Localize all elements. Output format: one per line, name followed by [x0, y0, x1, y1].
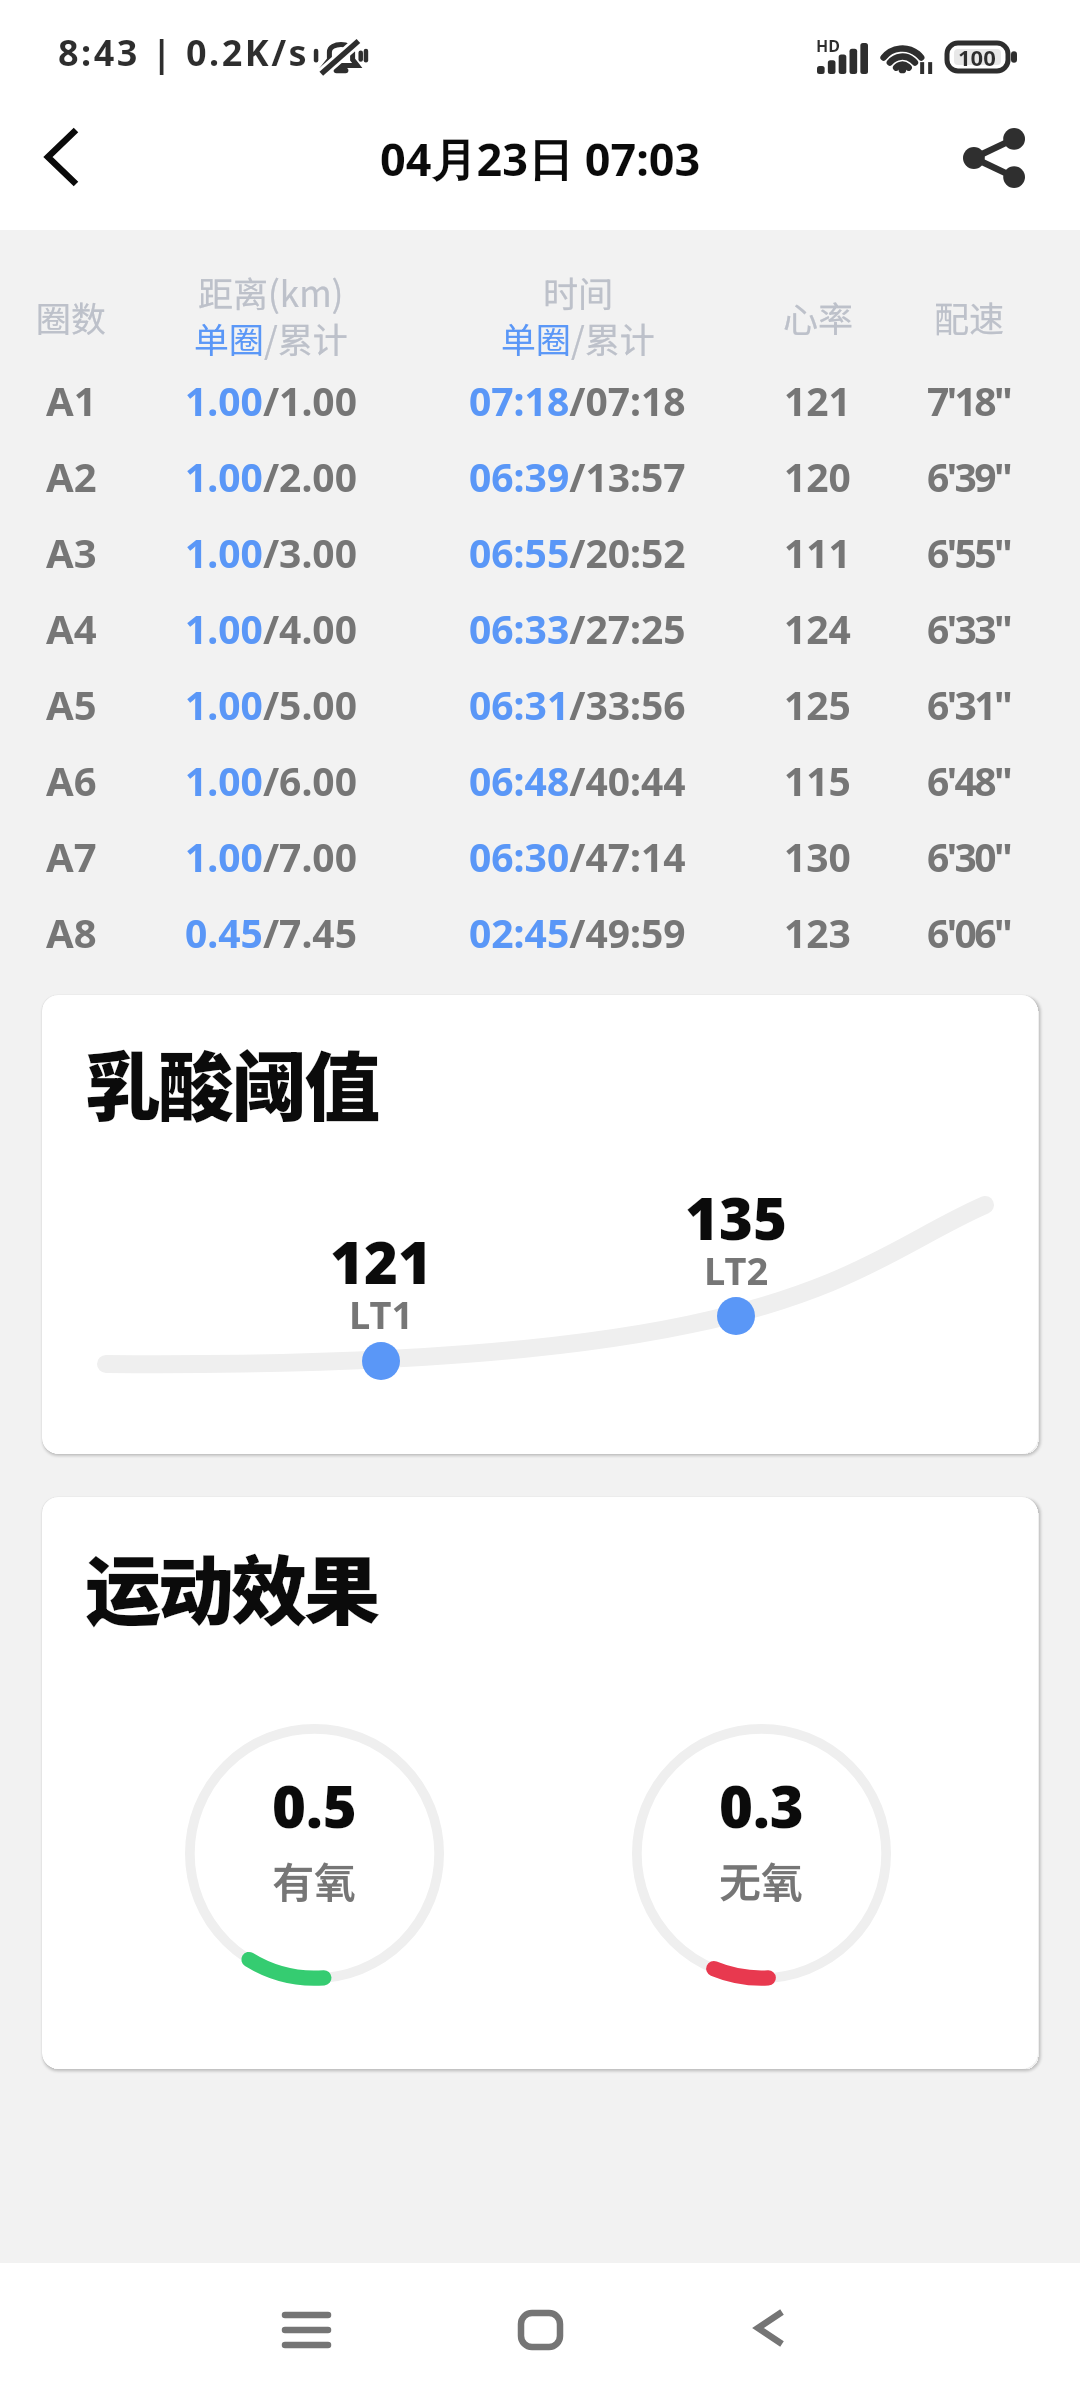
- staticText: 04月23日 07:03: [380, 128, 701, 189]
- staticText: A2: [46, 449, 97, 503]
- staticText: 1.00/3.00: [185, 526, 357, 579]
- staticText: 125: [784, 678, 851, 731]
- button[interactable]: Back: [20, 115, 104, 199]
- staticText: 6'06": [927, 906, 1010, 959]
- staticText: 6'39": [927, 450, 1010, 503]
- staticText: 8:43 | 0.2K/s: [58, 28, 310, 77]
- staticText: 111: [784, 526, 851, 579]
- staticText: 1.00/1.00: [185, 374, 357, 427]
- staticText: 100: [958, 42, 996, 72]
- staticText: 6'55": [927, 526, 1010, 579]
- button[interactable]: Home: [490, 2280, 590, 2380]
- button[interactable]: A1: [0, 362, 1080, 438]
- staticText: 07:18/07:18: [469, 374, 686, 427]
- staticText: A4: [46, 601, 97, 655]
- staticText: 123: [784, 906, 851, 959]
- staticText: 圈数: [36, 291, 107, 342]
- button[interactable]: A4: [0, 590, 1080, 666]
- staticText: 距离(km): [198, 266, 344, 317]
- staticText: A5: [46, 677, 97, 731]
- staticText: 121: [330, 1222, 432, 1301]
- staticText: 1.00/6.00: [185, 754, 357, 807]
- staticText: A8: [46, 905, 97, 959]
- staticText: 06:31/33:56: [469, 678, 686, 731]
- staticText: 1.00/4.00: [185, 602, 357, 655]
- staticText: 心率: [783, 291, 854, 342]
- staticText: 02:45/49:59: [469, 906, 686, 959]
- staticText: LT2: [704, 1244, 769, 1296]
- staticText: 7'18": [927, 374, 1010, 427]
- staticText: 有氧: [272, 1849, 357, 1910]
- staticText: 时间: [543, 266, 614, 317]
- staticText: HD: [816, 35, 840, 57]
- staticText: 单圈/累计: [194, 312, 348, 363]
- staticText: 06:48/40:44: [469, 754, 686, 807]
- staticText: 1.00/7.00: [185, 830, 357, 883]
- staticText: 1.00/2.00: [185, 450, 357, 503]
- button[interactable]: A2: [0, 438, 1080, 514]
- staticText: 06:39/13:57: [469, 450, 686, 503]
- staticText: A3: [46, 525, 97, 579]
- staticText: 6'30": [927, 830, 1010, 883]
- staticText: 单圈/累计: [501, 312, 655, 363]
- button[interactable]: A8: [0, 894, 1080, 970]
- staticText: 0.3: [719, 1766, 804, 1845]
- staticText: 6'31": [927, 678, 1010, 731]
- staticText: 120: [784, 450, 851, 503]
- button[interactable]: Back: [720, 2278, 820, 2378]
- staticText: A1: [46, 373, 97, 427]
- staticText: 运动效果: [85, 1531, 378, 1641]
- staticText: 115: [784, 754, 851, 807]
- button[interactable]: Share: [946, 110, 1042, 206]
- staticText: 6'33": [927, 602, 1010, 655]
- staticText: 130: [784, 830, 851, 883]
- staticText: LT1: [349, 1288, 414, 1340]
- staticText: 无氧: [719, 1849, 804, 1910]
- button[interactable]: A5: [0, 666, 1080, 742]
- button[interactable]: A6: [0, 742, 1080, 818]
- staticText: 6'48": [927, 754, 1010, 807]
- staticText: A6: [46, 753, 97, 807]
- button[interactable]: A3: [0, 514, 1080, 590]
- staticText: 124: [784, 602, 851, 655]
- button[interactable]: A7: [0, 818, 1080, 894]
- button[interactable]: Recent apps: [256, 2280, 356, 2380]
- staticText: A7: [46, 829, 97, 883]
- staticText: 121: [784, 374, 851, 427]
- staticText: 0.45/7.45: [185, 906, 357, 959]
- staticText: 06:33/27:25: [469, 602, 686, 655]
- staticText: 06:55/20:52: [469, 526, 686, 579]
- staticText: 配速: [934, 291, 1005, 342]
- staticText: 0.5: [272, 1766, 357, 1845]
- staticText: 06:30/47:14: [469, 830, 686, 883]
- staticText: 乳酸阈值: [85, 1027, 378, 1137]
- staticText: 135: [685, 1178, 787, 1257]
- staticText: 1.00/5.00: [185, 678, 357, 731]
